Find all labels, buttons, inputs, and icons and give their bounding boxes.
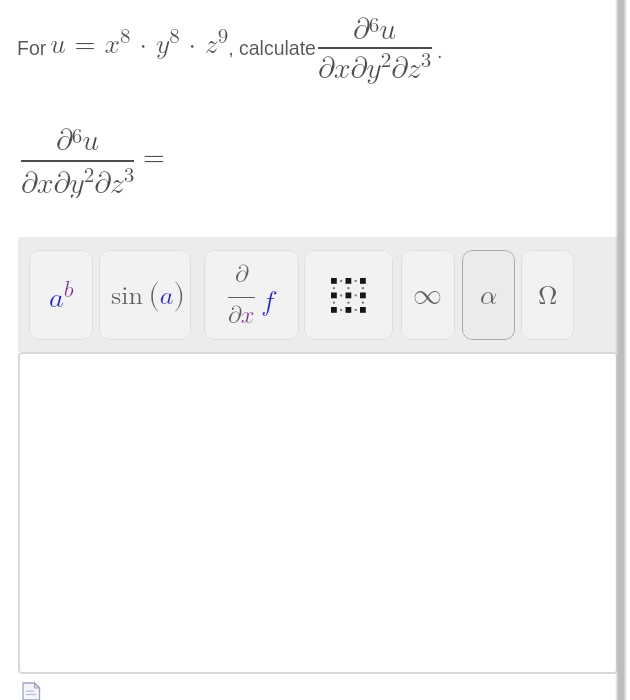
staticText: 𝛼: [480, 282, 498, 309]
staticText: sin (𝑎): [111, 280, 186, 310]
button[interactable]: 𝑎𝑏: [29, 250, 93, 340]
staticText: ∞: [413, 281, 443, 310]
staticText: 𝜕𝑥𝜕𝑦2𝜕𝑧3: [318, 50, 432, 83]
button[interactable]: 𝜕: [204, 250, 299, 340]
staticText: 𝑎𝑏: [49, 278, 74, 312]
staticText: Ω: [538, 282, 558, 309]
button[interactable]: Ω: [521, 250, 574, 340]
button[interactable]: 𝛼: [462, 250, 515, 340]
staticText: For 𝑢 = 𝑥8 ⋅ 𝑦8 ⋅ 𝑧9, calculate: [17, 26, 316, 60]
button[interactable]: [18, 352, 618, 674]
button[interactable]: sin (𝑎): [99, 250, 191, 340]
staticText: 𝜕𝑥𝜕𝑦2𝜕𝑧3: [21, 165, 134, 198]
staticText: .: [437, 40, 443, 62]
button[interactable]: ∞: [401, 250, 455, 340]
staticText: 𝜕𝑥: [228, 304, 255, 328]
staticText: 𝑓: [261, 287, 275, 315]
staticText: 𝜕: [235, 263, 248, 287]
staticText: =: [143, 143, 165, 171]
staticText: 𝜕6𝑢: [56, 126, 100, 156]
staticText: 𝜕6𝑢: [353, 15, 397, 45]
button[interactable]: [304, 250, 393, 340]
